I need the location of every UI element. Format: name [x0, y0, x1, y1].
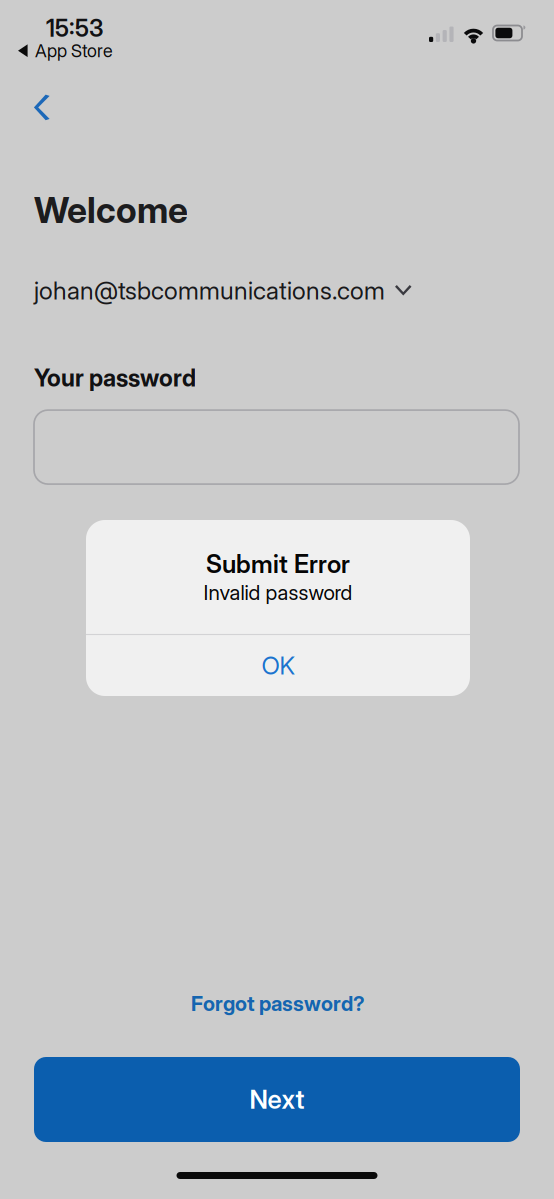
staticText: Submit Error [206, 549, 350, 579]
staticText: Invalid password [203, 580, 352, 605]
staticText: Your password [34, 363, 196, 392]
staticText: Forgot password? [191, 991, 365, 1016]
button[interactable]: Forgot password? [0, 995, 554, 1045]
staticText: 15:53 [46, 14, 103, 43]
button[interactable]: Next [34, 1057, 520, 1142]
staticText: Welcome [34, 189, 188, 231]
button[interactable]: Back [34, 86, 88, 130]
staticText: Next [249, 1084, 304, 1115]
staticText: App Store [35, 40, 113, 62]
button[interactable]: Your password [34, 410, 519, 484]
staticText: OK [261, 651, 294, 680]
staticText: johan@tsbcommunications.com [34, 276, 385, 305]
button[interactable]: OK [86, 635, 470, 696]
button[interactable]: johan@tsbcommunications.com [0, 273, 554, 307]
